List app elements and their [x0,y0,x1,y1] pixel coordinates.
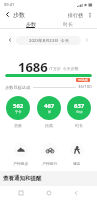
button[interactable]: 637 [67,96,91,128]
button[interactable]: 时长 [49,19,86,29]
staticText: 千卡 [15,110,22,114]
button[interactable]: 户外骑行 [42,143,58,166]
button[interactable]: 467 [37,96,61,128]
staticText: 户外跑步 [13,161,29,166]
staticText: 2023年8月23日 今天 [29,38,69,44]
staticText: 健走 [73,161,81,166]
staticText: 距离 [45,123,53,128]
staticText: /1万步 今天步数 [49,66,79,71]
staticText: 时长 [75,123,83,128]
button[interactable]: 健走 [70,143,84,166]
button[interactable]: More options [85,10,95,20]
staticText: 米 [48,110,52,114]
button[interactable]: Back [70,187,82,199]
button[interactable]: Recent apps [15,187,27,199]
button[interactable]: 562 [6,96,30,128]
staticText: 查看通知和提醒 [3,175,42,182]
staticText: 步数 [13,11,25,19]
button[interactable]: Next day [81,34,93,46]
staticText: 36/100 [78,84,92,90]
button[interactable]: 户外跑步 [13,143,29,166]
staticText: 排行榜 [68,12,83,18]
staticText: 467 [44,102,55,110]
staticText: 已达成 [78,78,88,82]
button[interactable]: 2023年8月23日 今天 [16,36,81,45]
button[interactable]: 排行榜 [66,10,85,20]
button[interactable]: Back [2,9,13,20]
staticText: 步数目标达成 [5,85,31,90]
staticText: 637 [74,102,85,110]
button[interactable]: Home [43,187,55,199]
button[interactable]: 步数 [12,19,49,29]
staticText: 步数 [26,21,36,27]
staticText: 1686 [18,58,48,72]
button[interactable]: Previous day [4,34,16,46]
staticText: 分钟 [76,110,83,114]
staticText: 时长 [63,21,73,27]
staticText: 09:41 [4,2,15,7]
staticText: 户外骑行 [42,161,58,166]
staticText: 热量 [14,123,22,128]
staticText: 562 [13,102,24,110]
